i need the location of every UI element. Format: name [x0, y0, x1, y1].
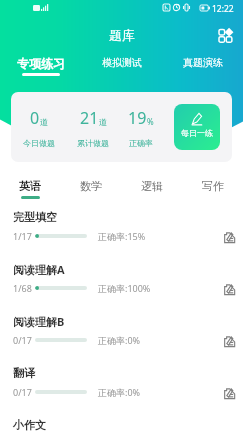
button[interactable]: 英语 — [0, 177, 60, 191]
staticText: 英语 — [19, 179, 41, 193]
staticText: 21 — [80, 107, 99, 129]
staticText: 今日做题 — [23, 138, 55, 148]
button[interactable]: 阅读理解A — [0, 258, 243, 310]
staticText: 小作文 — [13, 418, 46, 432]
staticText: 模拟测试 — [102, 56, 142, 69]
staticText: 逻辑 — [141, 179, 163, 193]
button[interactable]: 专项练习 — [0, 53, 81, 68]
button[interactable]: 小作文 — [0, 414, 243, 432]
button[interactable]: 数学 — [60, 177, 121, 191]
button[interactable]: 模拟测试 — [81, 53, 162, 66]
button[interactable]: 真题演练 — [162, 53, 243, 66]
button[interactable]: Practice — [221, 333, 237, 349]
button[interactable]: Practice — [221, 229, 237, 245]
button[interactable]: 阅读理解B — [0, 310, 243, 362]
staticText: 19 — [128, 107, 147, 129]
staticText: 正确率:100% — [98, 282, 151, 294]
staticText: 阅读理解A — [13, 262, 65, 277]
staticText: 专项练习 — [17, 56, 65, 71]
button[interactable]: 完型填空 — [0, 206, 243, 258]
staticText: 正确率:0% — [98, 386, 141, 398]
button[interactable]: 写作 — [182, 177, 243, 191]
staticText: 完型填空 — [13, 210, 57, 224]
staticText: 0/17 — [13, 334, 32, 346]
button[interactable]: Practice — [221, 281, 237, 297]
staticText: 每日一练 — [181, 128, 213, 138]
staticText: 0 — [30, 107, 40, 129]
staticText: 阅读理解B — [13, 314, 65, 329]
staticText: 真题演练 — [183, 56, 223, 69]
staticText: % — [147, 116, 154, 127]
staticText: 题库 — [109, 27, 135, 43]
button[interactable]: 逻辑 — [121, 177, 182, 191]
staticText: 正确率:0% — [98, 334, 141, 346]
button[interactable]: Categories — [215, 24, 237, 46]
staticText: 正确率 — [129, 138, 153, 148]
staticText: 1/17 — [13, 230, 32, 242]
staticText: 1/68 — [13, 282, 32, 294]
staticText: 道 — [40, 117, 48, 127]
staticText: 翻译 — [13, 366, 35, 380]
staticText: 0/17 — [13, 386, 32, 398]
staticText: 正确率:15% — [98, 230, 146, 242]
staticText: 数学 — [80, 179, 102, 193]
staticText: 道 — [99, 117, 107, 127]
staticText: 写作 — [202, 179, 224, 193]
staticText: 12:22 — [212, 3, 234, 15]
button[interactable]: 每日一练 — [174, 104, 220, 150]
button[interactable]: 翻译 — [0, 362, 243, 414]
staticText: 累计做题 — [77, 138, 109, 148]
button[interactable]: Practice — [221, 385, 237, 401]
